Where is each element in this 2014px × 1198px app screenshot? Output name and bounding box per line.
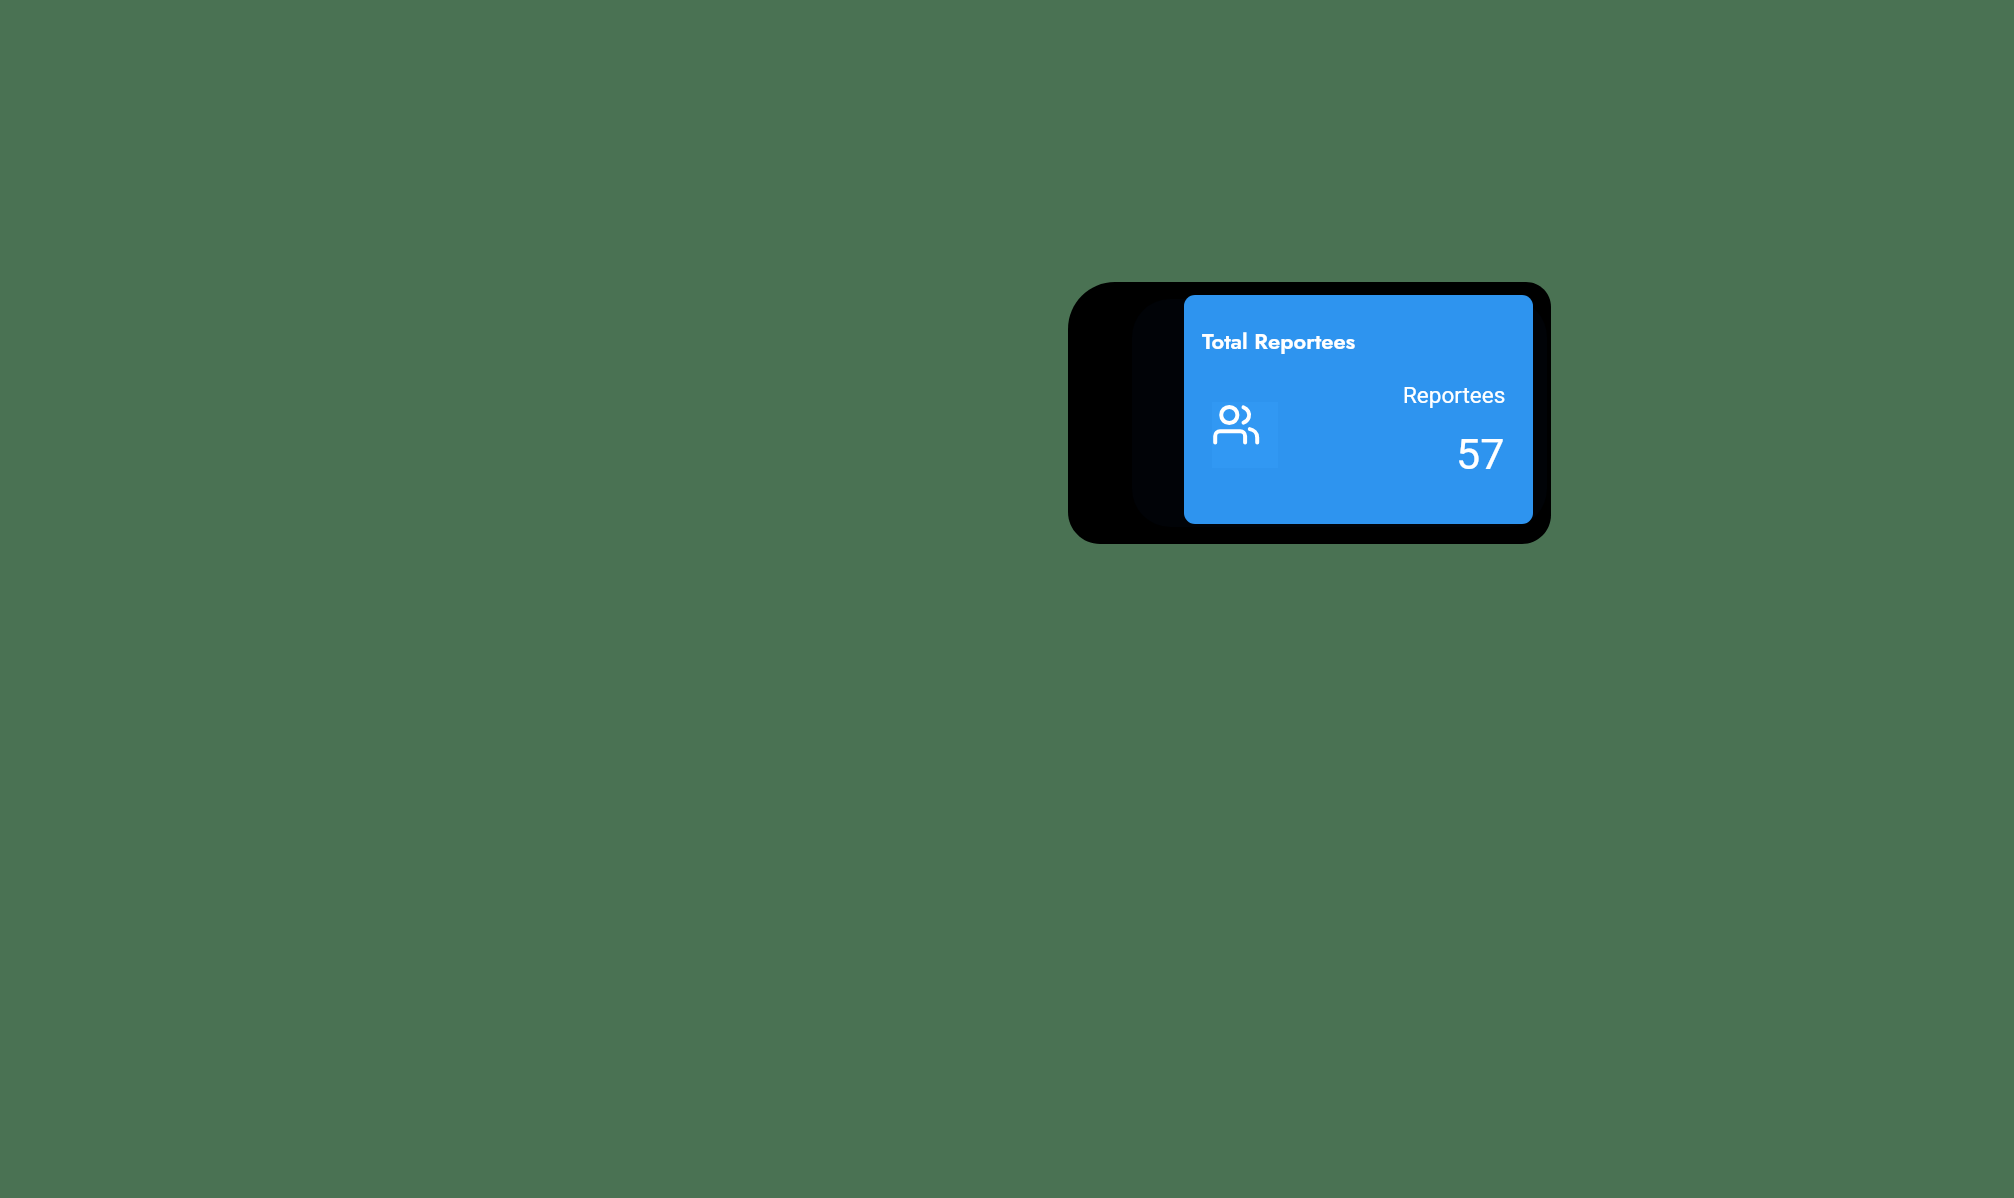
staticText: 57 (1456, 429, 1505, 479)
staticText: Reportees (1403, 382, 1506, 408)
button[interactable]: Total Reportees (1184, 295, 1533, 524)
staticText: Total Reportees (1202, 325, 1356, 357)
other: Reportees (1212, 402, 1278, 468)
